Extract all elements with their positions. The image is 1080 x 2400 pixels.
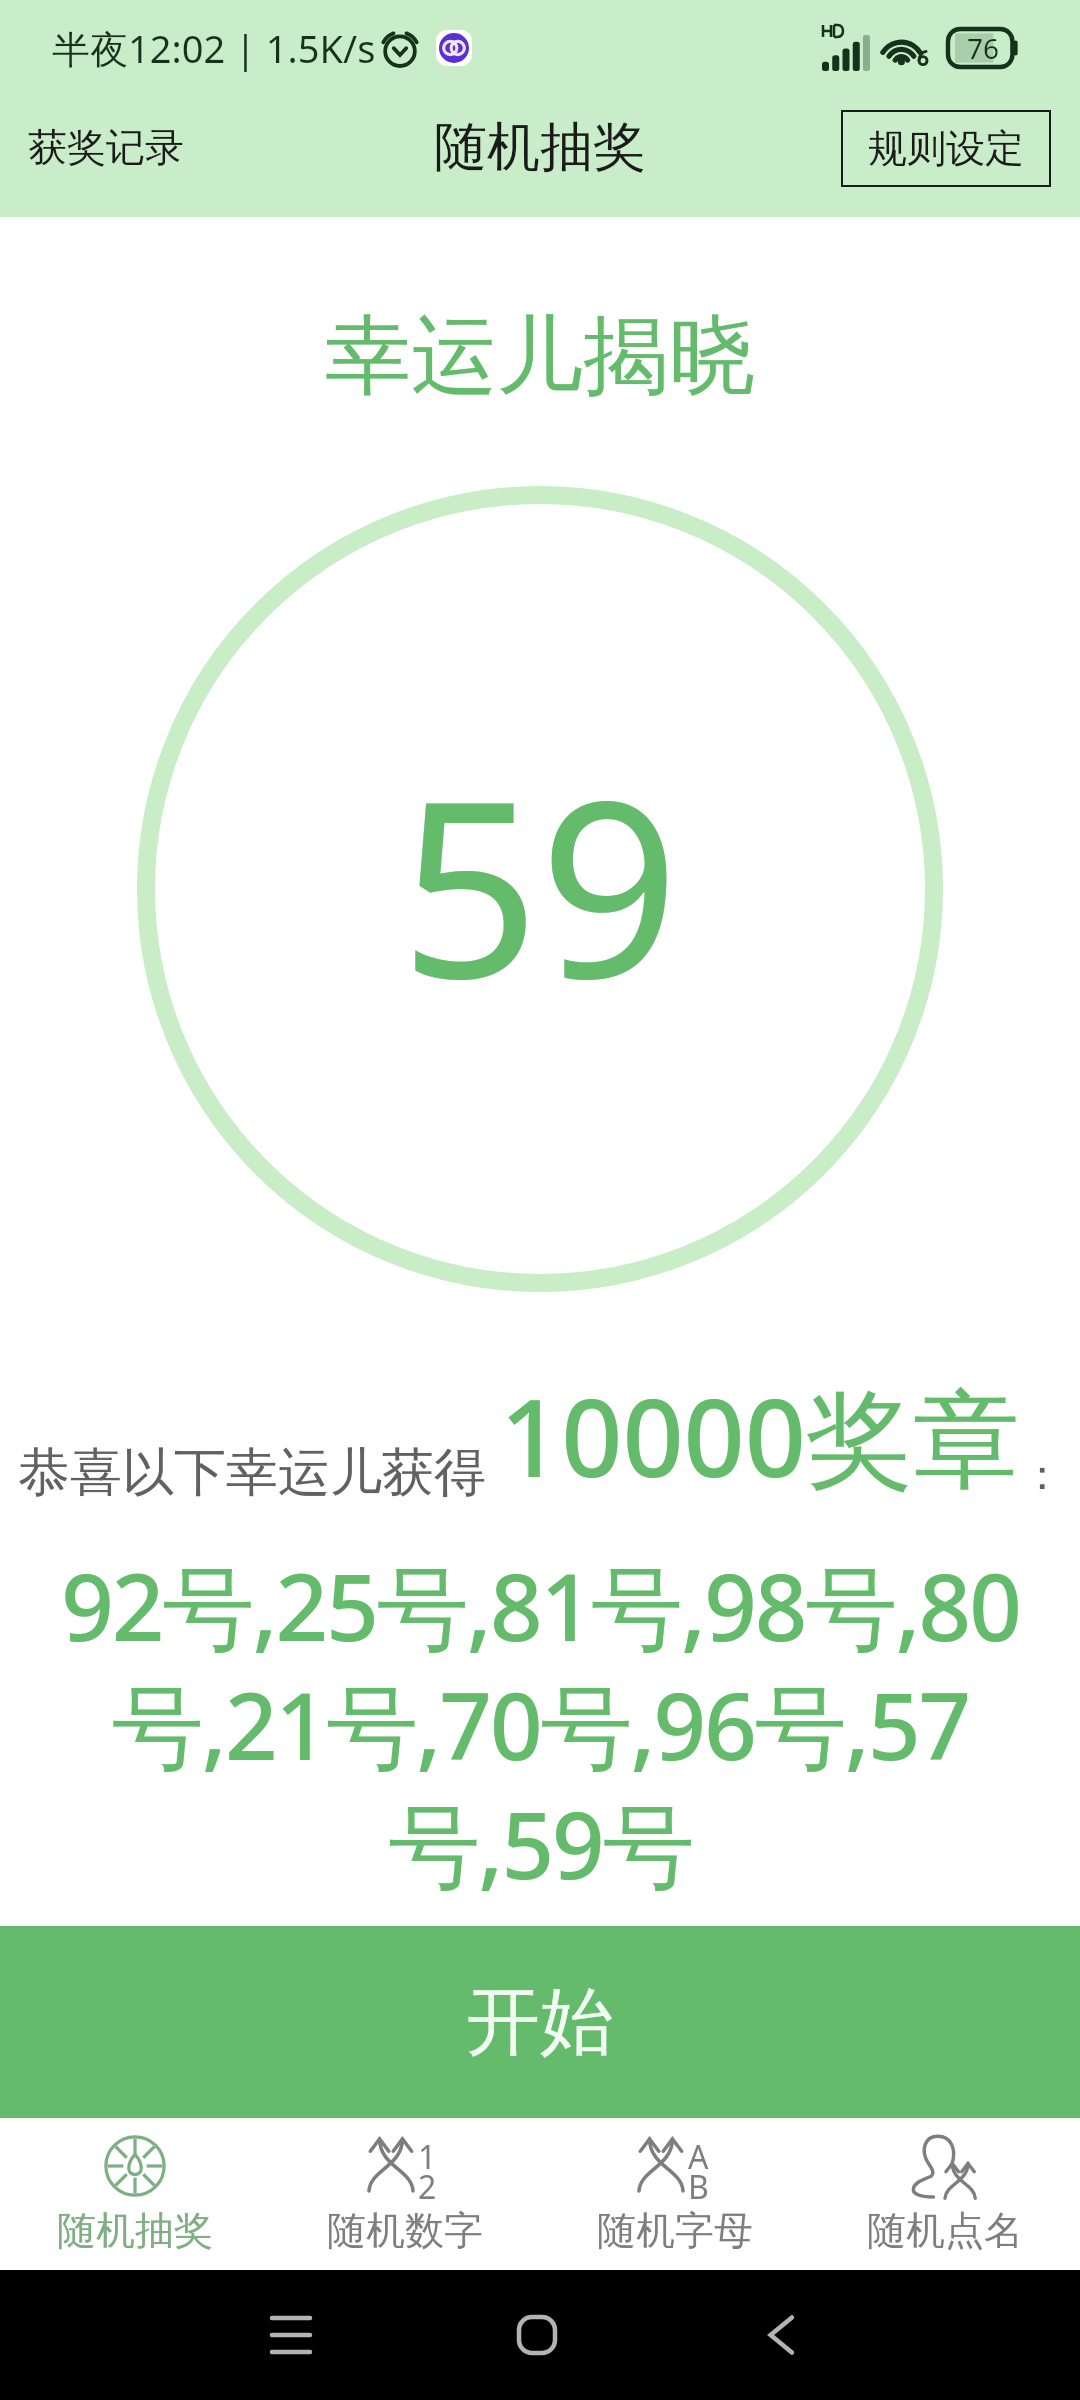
staticText: 半夜12:02 | 1.5K/s (52, 22, 376, 74)
staticText: 76 (967, 29, 1000, 67)
staticText: 随机点名 (867, 2206, 1023, 2255)
staticText: B (688, 2165, 709, 2209)
staticText: 10000奖章 (500, 1363, 1021, 1509)
button[interactable]: 随机点名 (810, 2118, 1080, 2270)
button[interactable]: 1 (270, 2118, 540, 2270)
button[interactable]: Recent apps (231, 2275, 351, 2395)
staticText: A (688, 2135, 709, 2179)
staticText: 获奖记录 (28, 123, 184, 172)
staticText: 随机字母 (597, 2206, 753, 2255)
button[interactable]: 开始 (0, 1926, 1080, 2118)
button[interactable]: A (540, 2118, 810, 2270)
staticText: 1 (418, 2135, 437, 2179)
button[interactable]: Home (477, 2275, 597, 2395)
staticText: 开始 (466, 1976, 614, 2069)
button[interactable]: Back (721, 2275, 841, 2395)
staticText: 随机数字 (327, 2206, 483, 2255)
staticText: ： (1021, 1449, 1063, 1502)
button[interactable]: 随机抽奖 (0, 2118, 270, 2270)
staticText: 59 (400, 717, 680, 1049)
staticText: 2 (418, 2165, 437, 2209)
staticText: 规则设定 (868, 124, 1024, 173)
staticText: 恭喜以下幸运儿获得 (18, 1440, 486, 1506)
staticText: 92号,25号,81号,98号,80 号,21号,70号,96号,57 号,59… (61, 1543, 1020, 1907)
button[interactable]: 获奖记录 (12, 109, 200, 186)
staticText: 随机抽奖 (434, 114, 646, 181)
staticText: 幸运儿揭晓 (325, 302, 755, 410)
button[interactable]: 规则设定 (841, 110, 1051, 187)
staticText: 随机抽奖 (57, 2206, 213, 2255)
